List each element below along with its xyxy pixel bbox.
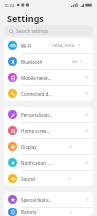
- staticText: Battery: [21, 209, 37, 215]
- button[interactable]: Personalization settings: [4, 107, 93, 122]
- staticText: Sound: [21, 176, 35, 182]
- button[interactable]: Special features: [4, 192, 93, 207]
- staticText: Search settings: [16, 28, 49, 34]
- staticText: On: [72, 59, 78, 65]
- button[interactable]: Battery: [4, 208, 93, 216]
- button[interactable]: Home screen settings: [4, 123, 93, 138]
- button[interactable]: Sound: [4, 171, 93, 186]
- staticText: Personalization settings: [21, 112, 53, 118]
- button[interactable]: Wi-Fi: [4, 38, 93, 53]
- staticText: Display: [21, 144, 37, 150]
- staticText: Settings: [7, 12, 44, 24]
- staticText: Special features: [21, 197, 53, 203]
- button[interactable]: Search settings: [4, 25, 93, 36]
- staticText: URSA_5GHz: [52, 43, 76, 49]
- staticText: Bluetooth: [21, 59, 43, 65]
- staticText: Connected devices: [21, 91, 53, 97]
- staticText: Wi-Fi: [21, 43, 32, 49]
- button[interactable]: Mobile network: [4, 70, 93, 85]
- staticText: Home screen settings: [21, 128, 53, 134]
- button[interactable]: Display: [4, 139, 93, 154]
- staticText: Mobile network: [21, 75, 53, 81]
- staticText: Notification & status bar: [21, 160, 53, 166]
- button[interactable]: Bluetooth: [4, 54, 93, 69]
- button[interactable]: Connected devices: [4, 86, 93, 101]
- staticText: 10:04: [4, 3, 15, 8]
- button[interactable]: Notification & status bar: [4, 155, 93, 170]
